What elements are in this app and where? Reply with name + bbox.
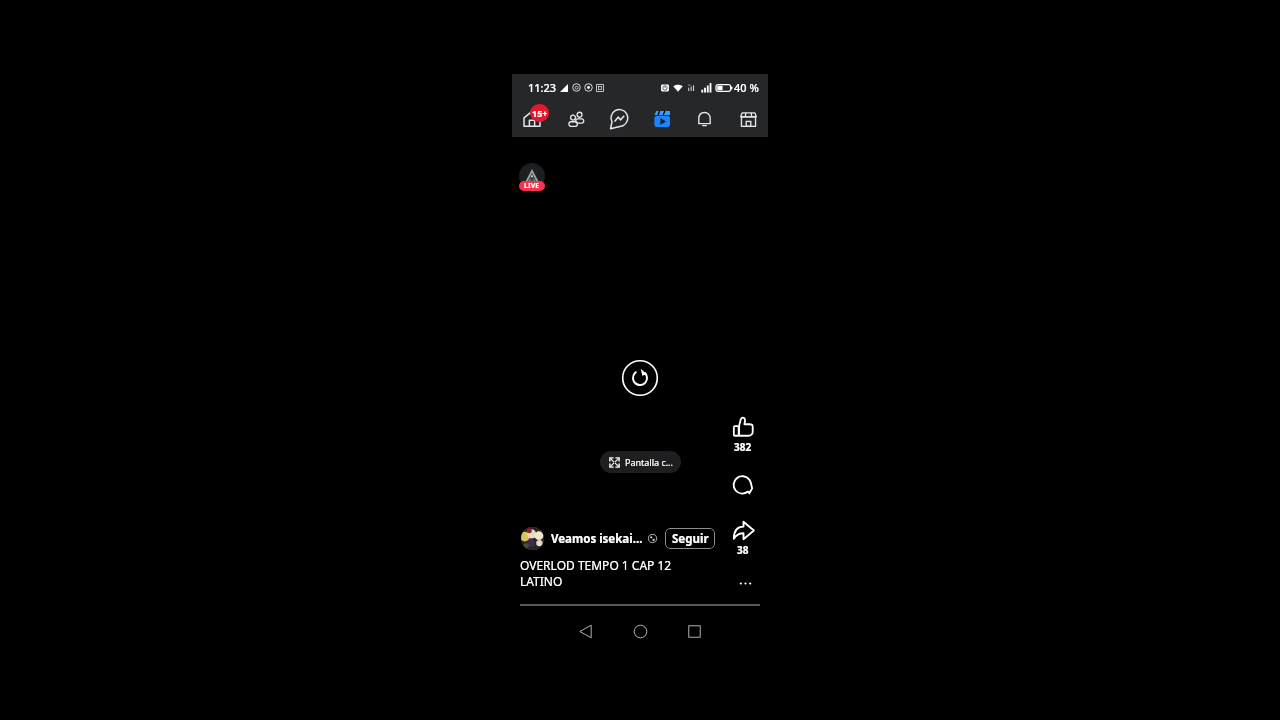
button[interactable]: Marketplace — [729, 101, 767, 137]
button[interactable]: Seguir — [665, 528, 715, 549]
button[interactable]: Notifications — [685, 101, 723, 137]
staticText: 382 — [734, 440, 752, 454]
staticText: 15+ — [532, 107, 548, 119]
button[interactable]: Comment — [731, 475, 755, 498]
staticText: LATINO — [520, 573, 563, 589]
button[interactable]: More options — [735, 573, 755, 593]
staticText: Pantalla c... — [625, 456, 673, 468]
button[interactable]: Pantalla c... — [600, 451, 681, 473]
staticText: OVERLOD TEMPO 1 CAP 12 — [520, 557, 672, 573]
staticText: LIVE — [524, 181, 540, 191]
button[interactable]: Like — [731, 416, 755, 454]
button[interactable]: Home — [623, 614, 657, 648]
button[interactable]: Friends — [557, 101, 595, 137]
button[interactable]: Messenger — [600, 101, 638, 137]
button[interactable]: Share — [731, 519, 755, 557]
button[interactable]: Watch — [643, 101, 681, 137]
staticText: 38 — [737, 543, 749, 557]
button[interactable]: Home — [513, 101, 551, 137]
button[interactable]: Recents — [677, 614, 711, 648]
staticText: 40 % — [734, 80, 759, 95]
staticText: Seguir — [672, 531, 709, 547]
button[interactable]: Live broadcaster — [519, 163, 545, 189]
button[interactable]: Profile picture — [521, 527, 544, 550]
staticText: 11:23 — [528, 80, 557, 95]
button[interactable]: Back — [568, 614, 602, 648]
staticText: Veamos isekai... — [551, 531, 643, 547]
button[interactable]: Replay — [621, 359, 659, 397]
